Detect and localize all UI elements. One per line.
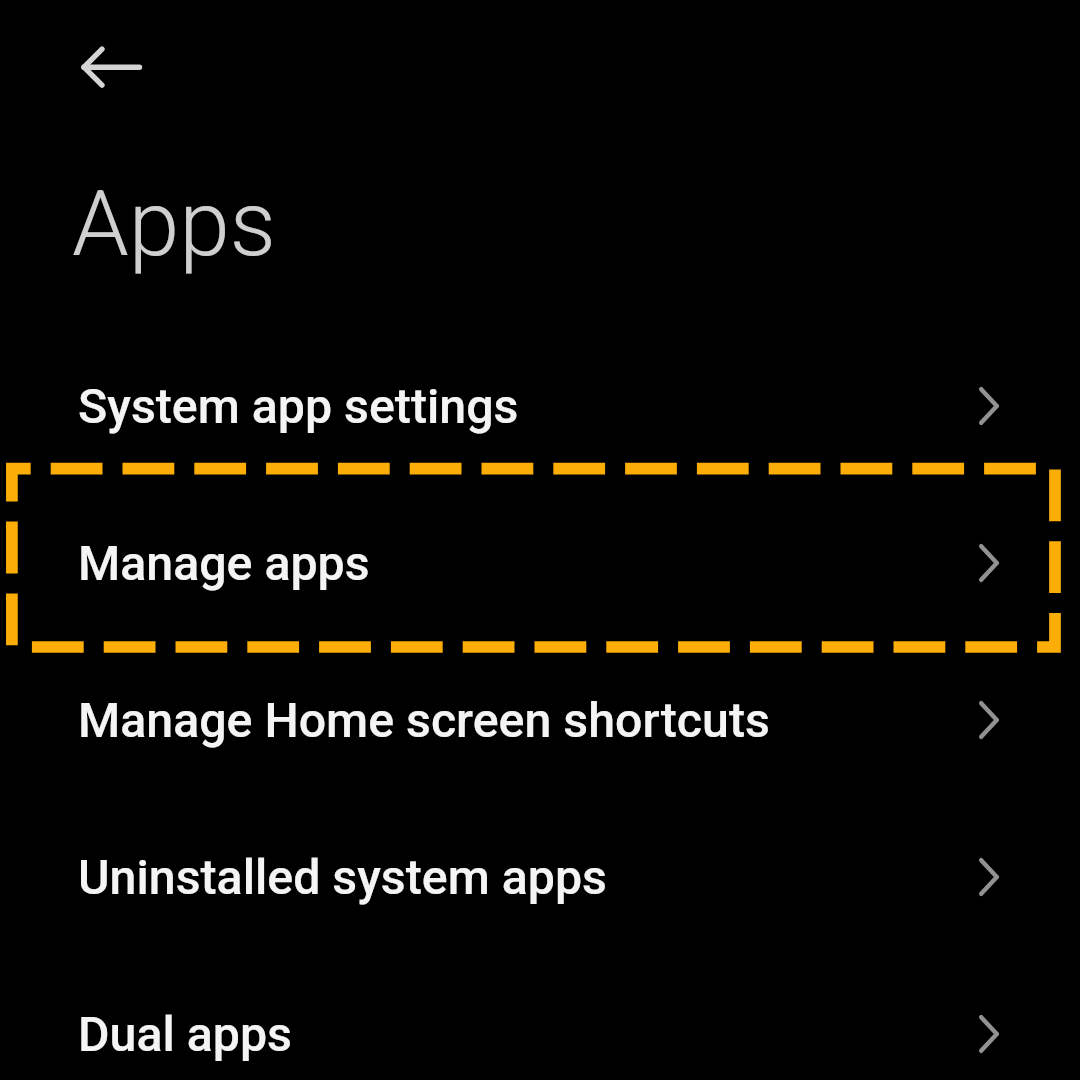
- staticText: Dual apps: [78, 1006, 292, 1063]
- button[interactable]: Manage Home screen shortcuts: [0, 642, 1080, 799]
- staticText: Manage apps: [78, 535, 370, 592]
- button[interactable]: Uninstalled system apps: [0, 799, 1080, 956]
- staticText: Uninstalled system apps: [78, 849, 607, 906]
- staticText: Manage Home screen shortcuts: [78, 692, 770, 749]
- staticText: Apps: [72, 171, 276, 278]
- button[interactable]: Dual apps: [0, 956, 1080, 1080]
- button[interactable]: Back: [52, 27, 132, 107]
- button[interactable]: System app settings: [0, 328, 1080, 485]
- staticText: System app settings: [78, 378, 519, 435]
- button[interactable]: Manage apps: [0, 485, 1080, 642]
